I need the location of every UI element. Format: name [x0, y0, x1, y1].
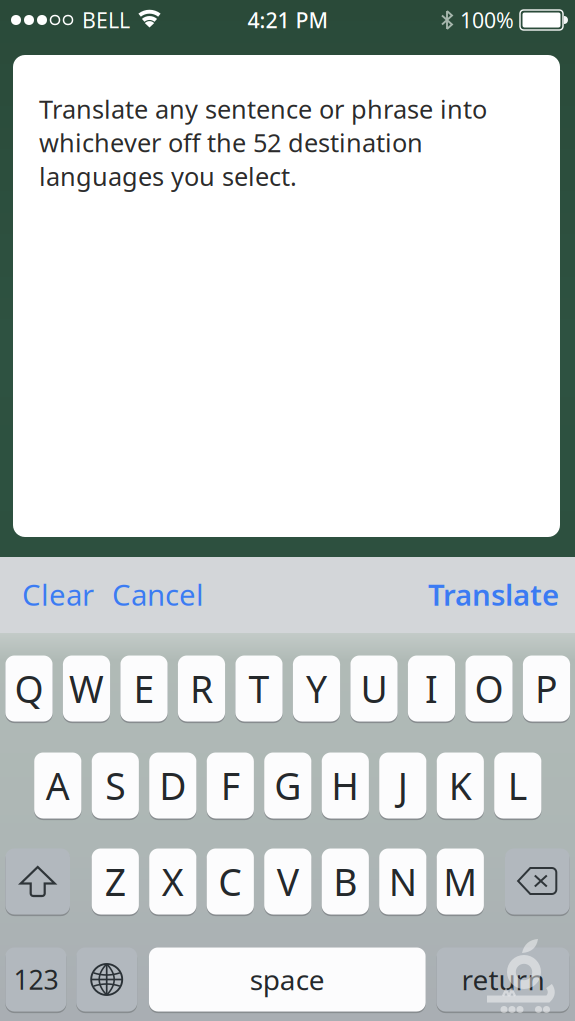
staticText: T — [248, 664, 269, 713]
button[interactable]: F — [207, 751, 254, 820]
staticText: BELL — [82, 6, 130, 34]
button[interactable]: Next keyboard — [76, 946, 137, 1013]
staticText: 100% — [460, 6, 514, 34]
button[interactable]: Shift — [5, 847, 70, 916]
staticText: N — [389, 857, 417, 906]
staticText: S — [105, 761, 125, 810]
button[interactable]: X — [149, 847, 196, 916]
staticText: 4:21 PM — [247, 6, 328, 34]
button[interactable]: H — [322, 751, 369, 820]
staticText: J — [398, 761, 408, 810]
button[interactable]: Y — [293, 654, 340, 723]
staticText: G — [274, 761, 301, 810]
staticText: Q — [14, 664, 43, 713]
staticText: O — [474, 664, 503, 713]
staticText: P — [535, 664, 558, 713]
button[interactable]: E — [120, 654, 168, 723]
staticText: Translate — [428, 575, 559, 614]
staticText: I — [425, 664, 438, 713]
staticText: B — [333, 857, 357, 906]
button[interactable]: T — [235, 654, 283, 723]
staticText: Translate any sentence or phrase into wh… — [39, 92, 487, 193]
staticText: U — [360, 664, 387, 713]
button[interactable]: D — [149, 751, 196, 820]
staticText: F — [221, 761, 240, 810]
staticText: A — [46, 761, 70, 810]
staticText: X — [162, 857, 184, 906]
button[interactable]: Translate — [428, 575, 559, 614]
button[interactable]: space — [149, 946, 426, 1013]
staticText: Y — [306, 664, 327, 713]
staticText: V — [277, 857, 299, 906]
button[interactable]: V — [264, 847, 311, 916]
button[interactable]: A — [34, 751, 81, 820]
staticText: H — [331, 761, 359, 810]
button[interactable]: W — [63, 654, 110, 723]
button[interactable]: J — [379, 751, 426, 820]
staticText: K — [449, 761, 472, 810]
button[interactable]: U — [350, 654, 398, 723]
staticText: R — [190, 664, 213, 713]
button[interactable]: K — [437, 751, 484, 820]
button[interactable]: Cancel — [112, 575, 204, 614]
staticText: L — [508, 761, 528, 810]
button[interactable]: B — [322, 847, 369, 916]
button[interactable]: P — [523, 654, 570, 723]
button[interactable]: Clear — [22, 575, 94, 614]
staticText: Clear — [22, 575, 94, 614]
button[interactable]: return — [436, 946, 569, 1013]
staticText: Z — [105, 857, 126, 906]
button[interactable]: S — [92, 751, 139, 820]
button[interactable]: Delete — [505, 847, 570, 916]
staticText: W — [69, 664, 104, 713]
button[interactable]: R — [178, 654, 225, 723]
staticText: D — [159, 761, 186, 810]
staticText: space — [250, 961, 325, 998]
staticText: M — [443, 857, 477, 906]
button[interactable]: C — [207, 847, 254, 916]
staticText: 123 — [13, 962, 58, 997]
staticText: C — [218, 857, 242, 906]
button[interactable]: Q — [5, 654, 53, 723]
button[interactable]: 123 — [5, 946, 66, 1013]
button[interactable]: N — [379, 847, 426, 916]
button[interactable]: Z — [92, 847, 139, 916]
staticText: E — [133, 664, 154, 713]
button[interactable]: M — [437, 847, 484, 916]
button[interactable]: I — [408, 654, 455, 723]
button[interactable]: O — [465, 654, 513, 723]
staticText: Cancel — [112, 575, 204, 614]
staticText: return — [461, 961, 544, 998]
button[interactable]: L — [494, 751, 541, 820]
button[interactable]: G — [264, 751, 311, 820]
